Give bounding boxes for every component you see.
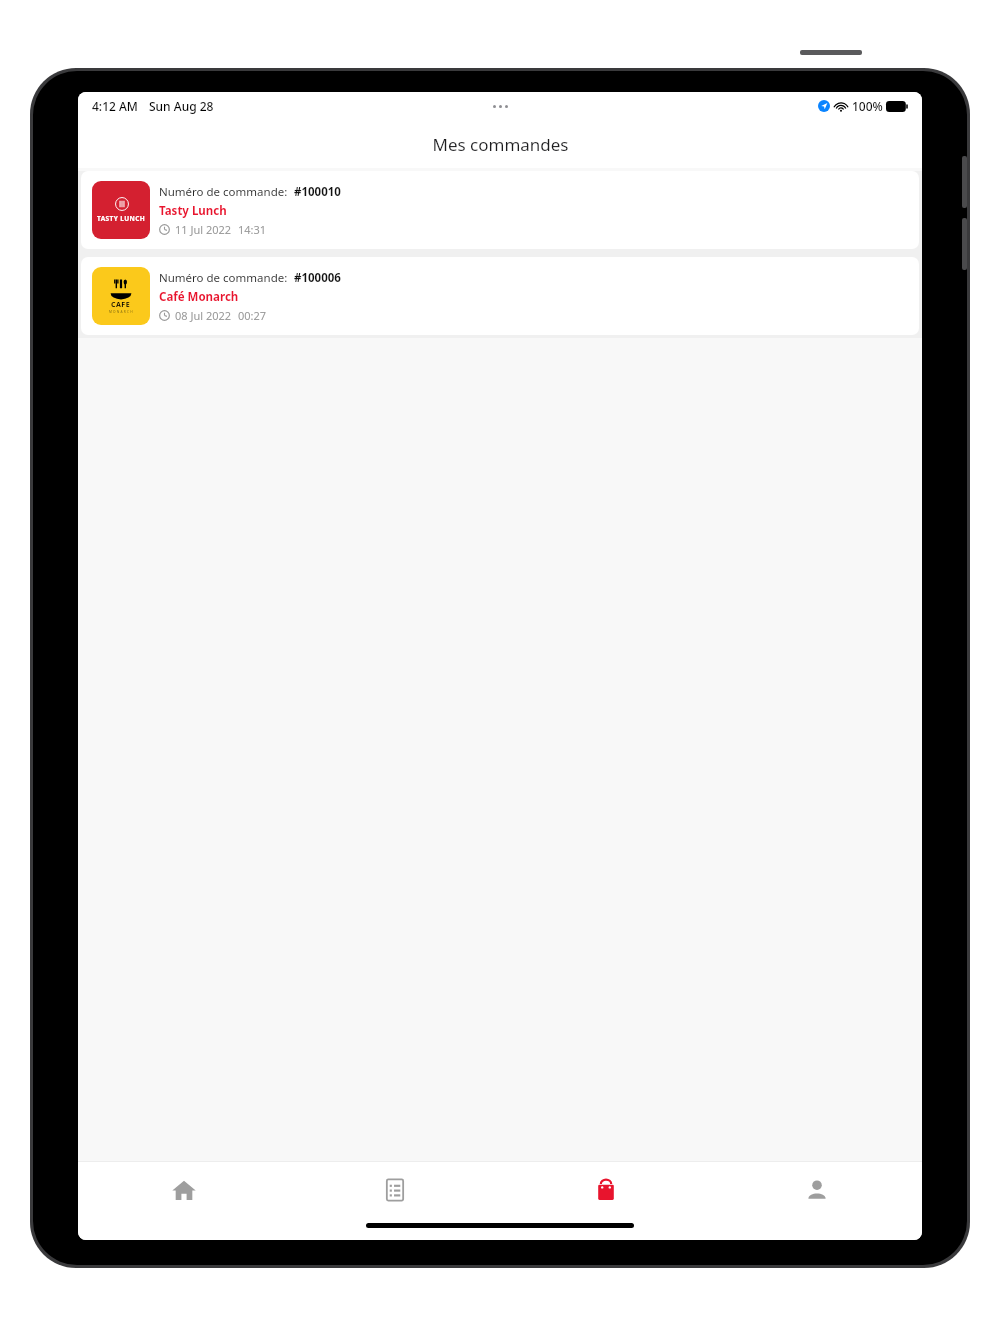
staticText: 11 Jul 2022	[175, 222, 232, 237]
button[interactable]: TASTY LUNCH	[81, 171, 919, 249]
staticText: Mes commandes	[432, 133, 569, 156]
staticText: 08 Jul 2022	[175, 308, 232, 323]
staticText: CAFE	[111, 300, 131, 310]
staticText: 100%	[852, 98, 883, 114]
button[interactable]: Home	[78, 1162, 289, 1218]
button[interactable]: Profile	[711, 1162, 922, 1218]
staticText: M O N A R C H	[109, 310, 133, 314]
staticText: Tasty Lunch	[159, 203, 227, 219]
staticText: 14:31	[238, 222, 267, 237]
staticText: 00:27	[238, 308, 267, 323]
button[interactable]: CAFE	[81, 257, 919, 335]
staticText: Sun Aug 28	[149, 98, 214, 114]
staticText: #100006	[294, 270, 341, 286]
staticText: Numéro de commande:	[159, 184, 288, 200]
staticText: TASTY LUNCH	[97, 214, 146, 223]
staticText: Café Monarch	[159, 289, 239, 305]
staticText: #100010	[294, 184, 341, 200]
staticText: 4:12 AM	[92, 98, 138, 114]
button[interactable]: Orders	[500, 1162, 711, 1218]
staticText: Numéro de commande:	[159, 270, 288, 286]
button[interactable]: Menu	[289, 1162, 500, 1218]
